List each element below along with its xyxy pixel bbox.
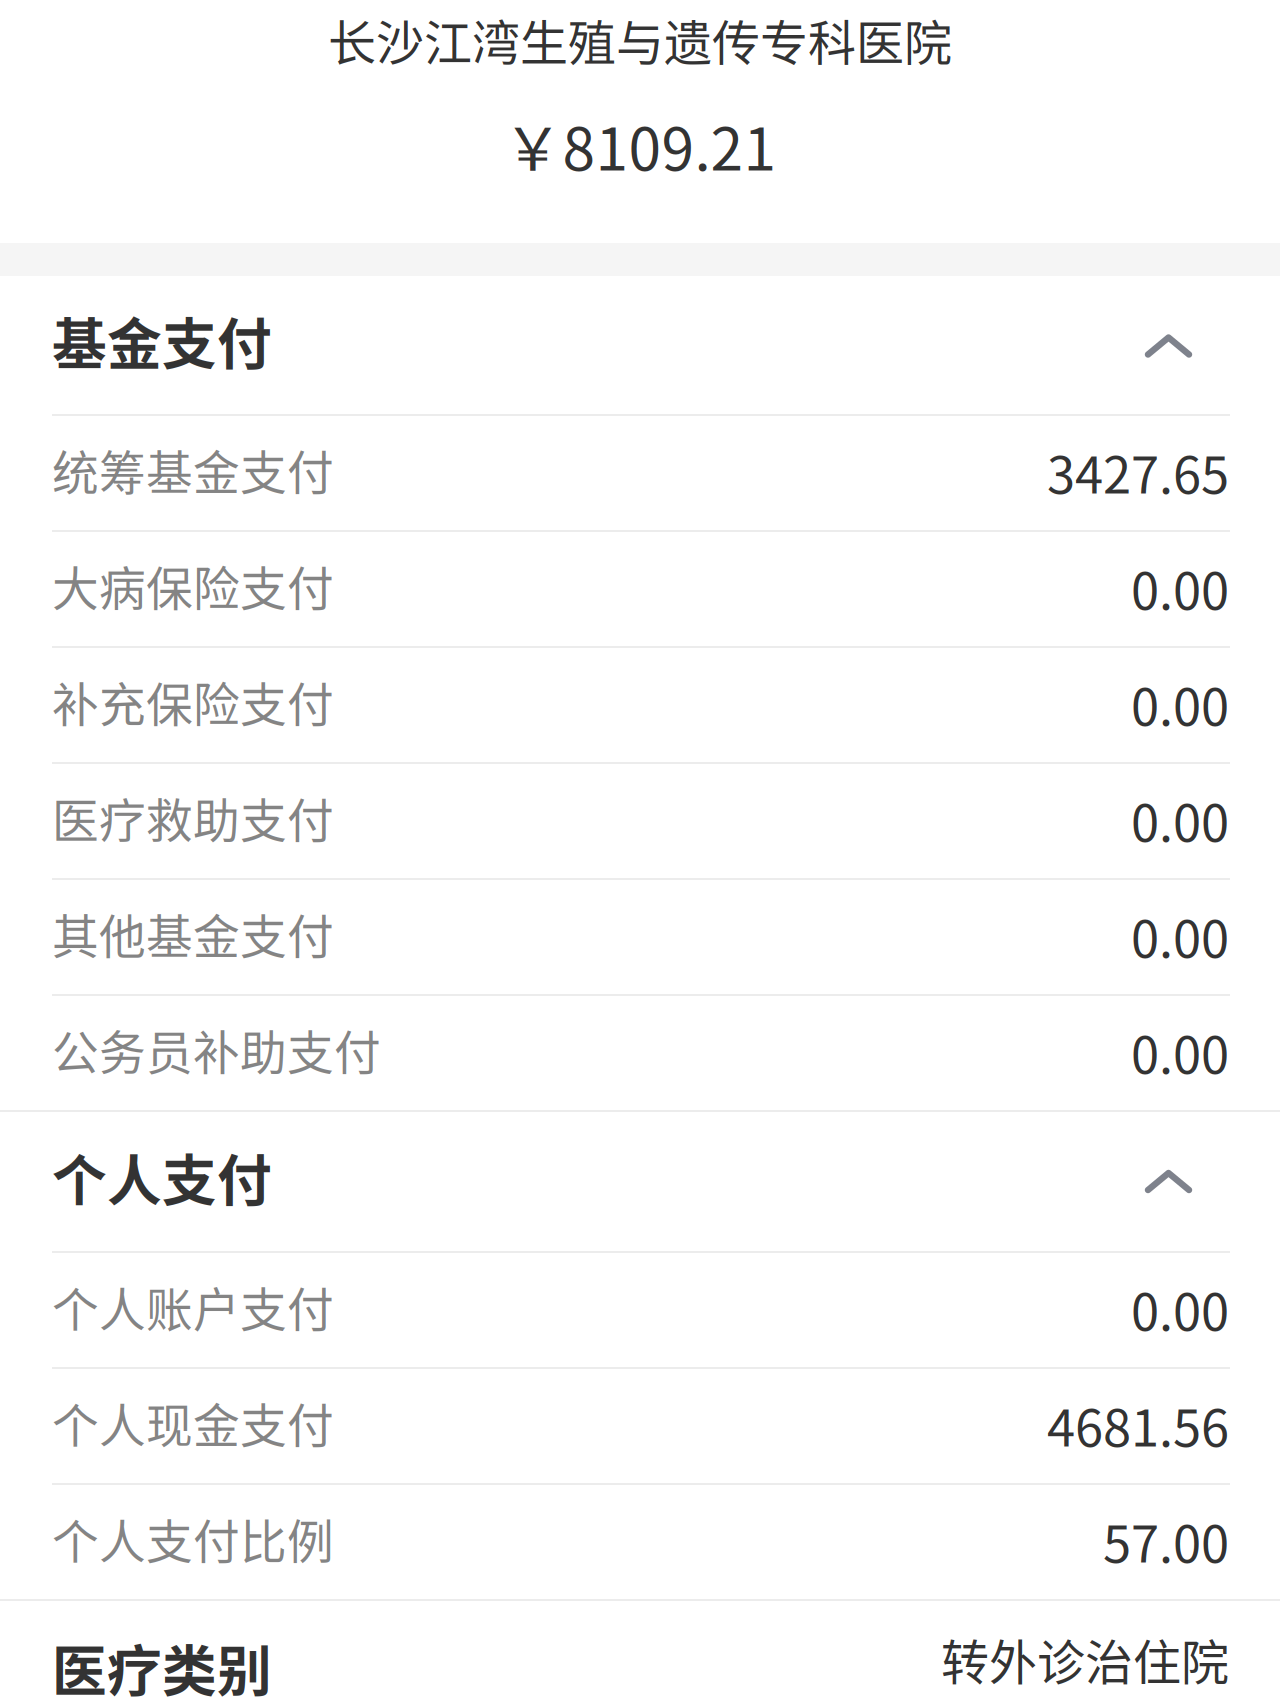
staticText: 大病保险支付 [52,552,334,619]
staticText: 基金支付 [52,300,272,380]
staticText: 0.00 [1131,899,1229,972]
button[interactable]: 其他基金支付 [0,880,1280,994]
staticText: 0.00 [1131,1015,1229,1088]
staticText: 长沙江湾生殖与遗传专科医院 [328,5,952,74]
button[interactable]: 个人账户支付 [0,1253,1280,1367]
staticText: 4681.56 [1047,1388,1229,1461]
button[interactable]: 个人现金支付 [0,1369,1280,1483]
staticText: 0.00 [1131,783,1229,856]
staticText: 3427.65 [1047,435,1229,508]
staticText: 转外诊治住院 [941,1624,1229,1694]
staticText: 57.00 [1103,1504,1229,1577]
button[interactable]: 个人支付比例 [0,1485,1280,1599]
staticText: 医疗救助支付 [52,784,334,851]
staticText: 0.00 [1131,551,1229,624]
staticText: 其他基金支付 [52,900,334,967]
button[interactable]: 医疗救助支付 [0,764,1280,878]
button[interactable]: 公务员补助支付 [0,996,1280,1110]
staticText: ￥8109.21 [503,102,776,187]
staticText: 个人支付 [52,1137,272,1216]
staticText: 个人现金支付 [52,1389,334,1456]
staticText: 0.00 [1131,1272,1229,1345]
button[interactable]: 基金支付 [0,276,1280,414]
staticText: 0.00 [1131,667,1229,740]
button[interactable]: 个人支付 [0,1112,1280,1251]
staticText: 个人支付比例 [52,1505,334,1572]
button[interactable]: 统筹基金支付 [0,416,1280,530]
button[interactable]: 大病保险支付 [0,532,1280,646]
button[interactable]: 医疗类别 [0,1601,1280,1707]
staticText: 个人账户支付 [52,1273,334,1340]
button[interactable]: 补充保险支付 [0,648,1280,762]
staticText: 统筹基金支付 [52,436,334,503]
staticText: 公务员补助支付 [52,1016,381,1083]
staticText: 医疗类别 [52,1627,272,1707]
staticText: 补充保险支付 [52,668,334,735]
